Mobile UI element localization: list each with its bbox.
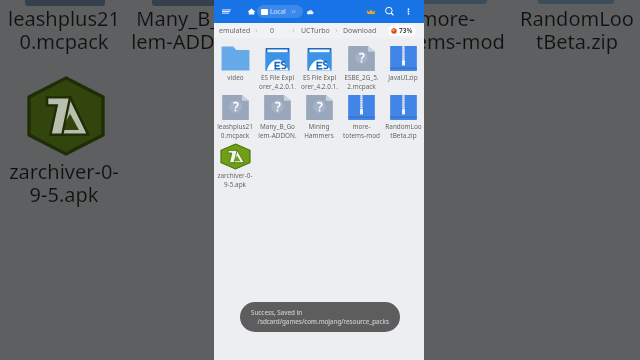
button[interactable]: More options — [404, 7, 413, 16]
staticText: Local — [270, 7, 286, 16]
button[interactable]: Home — [247, 7, 256, 16]
staticText: UCTurbo — [301, 26, 330, 36]
staticText: video — [227, 73, 244, 82]
staticText: 73% — [399, 26, 413, 35]
button[interactable]: more- totems-mod — [340, 95, 382, 144]
staticText: leashplus21 0.mcpack — [8, 5, 120, 55]
staticText: leashplus21 0.mcpack — [217, 122, 253, 140]
button[interactable]: zarchiver-0- 9-5.apk — [214, 144, 256, 193]
staticText: ESBE_2G_5. 2.mcpack — [344, 73, 379, 91]
staticText: Download — [343, 26, 377, 36]
button[interactable]: video — [214, 46, 256, 95]
staticText: ES File Expl orer_4.2.0.1. — [301, 73, 338, 91]
button[interactable]: Search — [384, 6, 395, 17]
button[interactable]: Cloud — [306, 8, 314, 16]
staticText: RandomLoo tBeta.zip — [520, 5, 634, 55]
button[interactable]: Local — [257, 5, 303, 18]
button[interactable]: leashplus21 0.mcpack — [214, 95, 256, 144]
staticText: Success, Saved in /sdcard/games/com.moja… — [251, 308, 389, 326]
button[interactable]: RandomLoo tBeta.zip — [382, 95, 424, 144]
button[interactable]: Menu — [222, 7, 231, 16]
staticText: more- totems-mod — [389, 5, 505, 55]
staticText: RandomLoo tBeta.zip — [385, 122, 422, 140]
button[interactable]: emulated — [219, 26, 251, 36]
staticText: Mining Hammers — [304, 122, 334, 140]
button[interactable]: Many_B_Go lem-ADDON. — [256, 95, 298, 144]
button[interactable]: JavaUI.zip — [382, 46, 424, 95]
button[interactable]: ES File Expl orer_4.2.0.1. — [256, 46, 298, 95]
button[interactable]: 0 — [270, 26, 275, 36]
button[interactable]: Premium — [366, 7, 376, 17]
staticText: emulated — [219, 26, 251, 36]
staticText: ES File Expl orer_4.2.0.1. — [259, 73, 296, 91]
button[interactable]: ESBE_2G_5. 2.mcpack — [340, 46, 382, 95]
staticText: Many_B_Go lem-ADDON. — [258, 122, 297, 140]
staticText: JavaUI.zip — [388, 73, 418, 82]
staticText: more- totems-mod — [343, 122, 380, 140]
button[interactable]: UCTurbo — [301, 26, 330, 36]
button[interactable]: Mining Hammers — [298, 95, 340, 144]
staticText: zarchiver-0- 9-5.apk — [9, 158, 119, 208]
staticText: Many_B_Go lem-ADDON. — [131, 5, 251, 55]
button[interactable]: Download — [343, 26, 377, 36]
staticText: 0 — [270, 26, 275, 36]
button[interactable]: ES File Expl orer_4.2.0.1. — [298, 46, 340, 95]
staticText: zarchiver-0- 9-5.apk — [217, 171, 253, 189]
button[interactable]: Success, Saved in /sdcard/games/com.moja… — [240, 302, 400, 332]
